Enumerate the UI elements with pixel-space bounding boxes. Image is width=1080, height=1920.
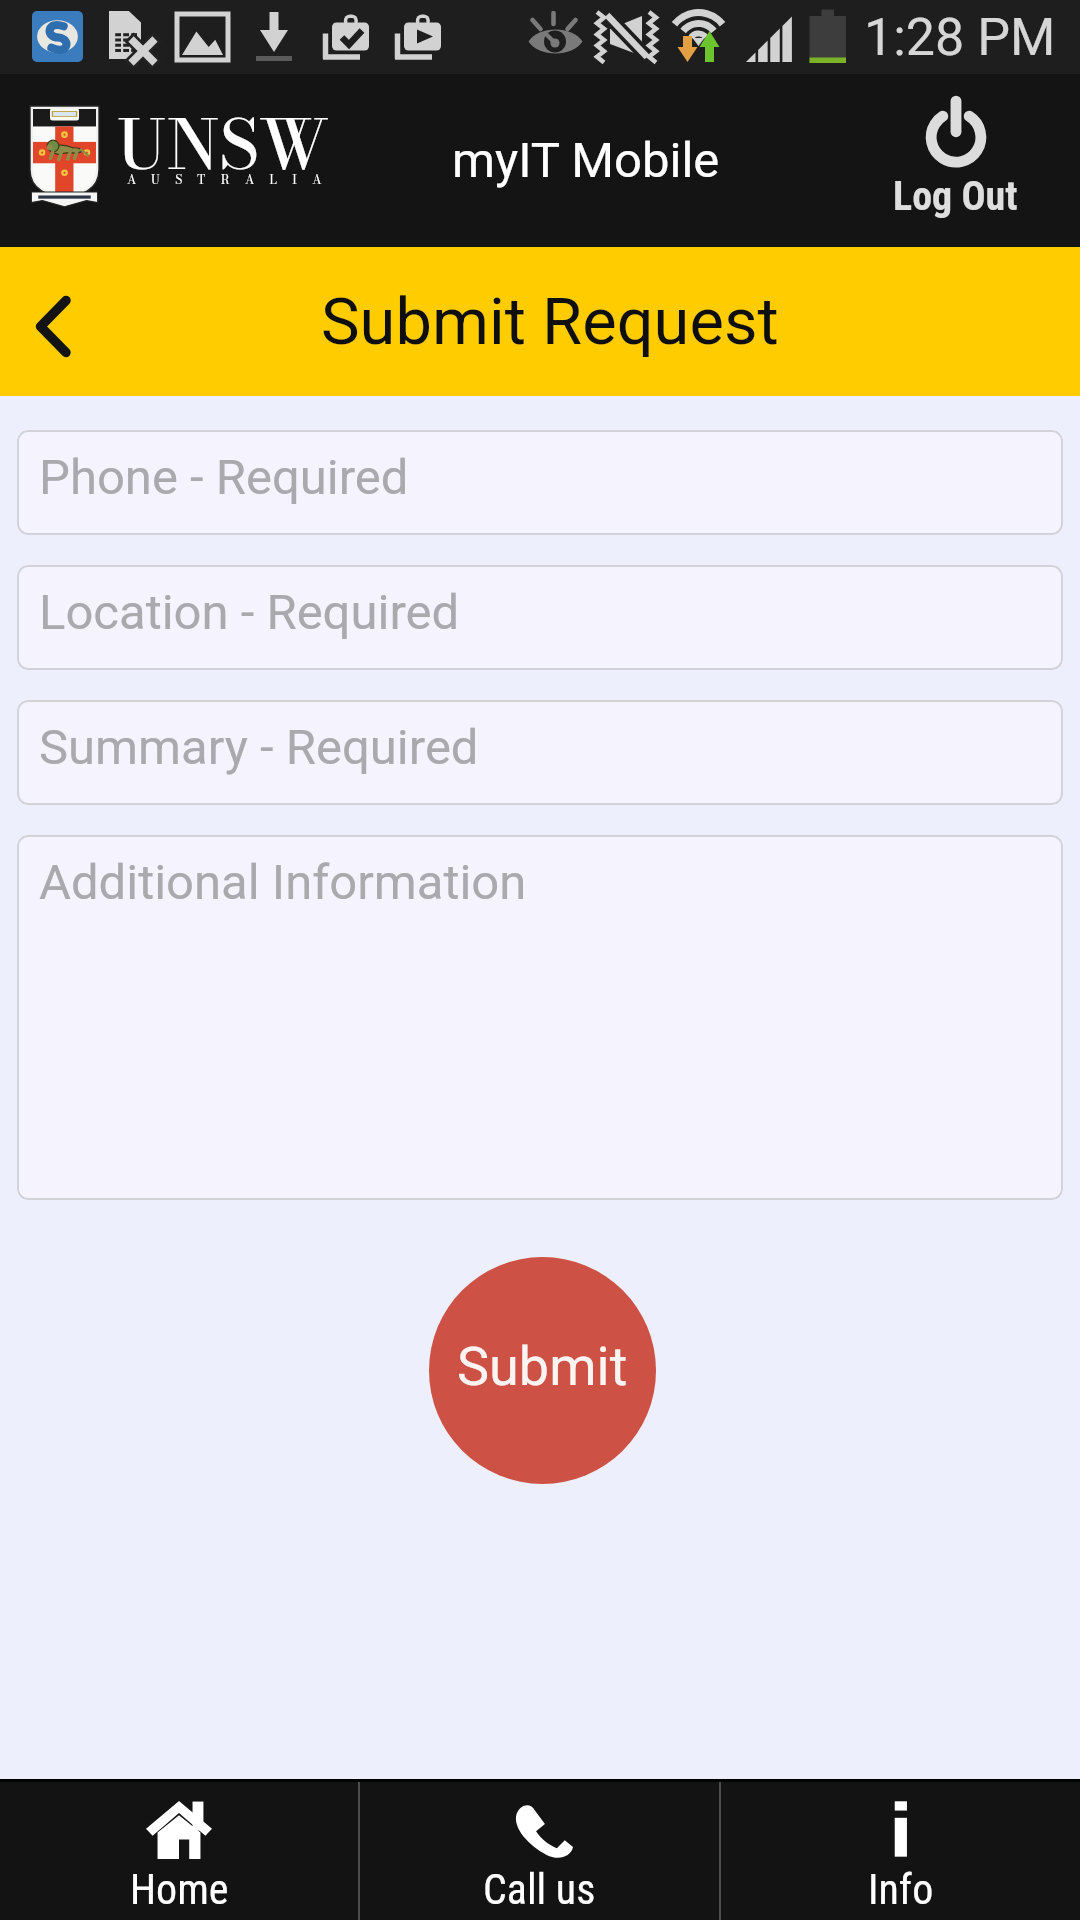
staticText: Home [130,1865,229,1914]
button[interactable]: Call us [360,1782,719,1920]
button[interactable]: Summary - Required [17,700,1063,805]
staticText: Summary - Required [39,719,479,776]
button[interactable]: Back [0,247,125,396]
button[interactable]: Submit [429,1257,656,1484]
staticText: UNSW [117,92,330,196]
staticText: Phone - Required [39,449,409,506]
staticText: Submit Request [321,284,779,360]
button[interactable]: Location - Required [17,565,1063,670]
button[interactable]: Home [0,1782,358,1920]
button[interactable]: Phone - Required [17,430,1063,535]
staticText: myIT Mobile [452,132,720,189]
staticText: Location - Required [39,584,460,641]
staticText: Additional Information [39,854,527,911]
button[interactable]: Log Out [893,96,1018,220]
staticText: Submit [457,1335,628,1398]
staticText: AUSTRALIA [127,170,337,188]
staticText: 1:28 PM [864,7,1056,68]
button[interactable]: Additional Information [17,835,1063,1200]
button[interactable]: Info [721,1782,1080,1920]
staticText: Info [868,1865,934,1914]
staticText: Call us [483,1865,596,1914]
staticText: Log Out [893,173,1018,220]
